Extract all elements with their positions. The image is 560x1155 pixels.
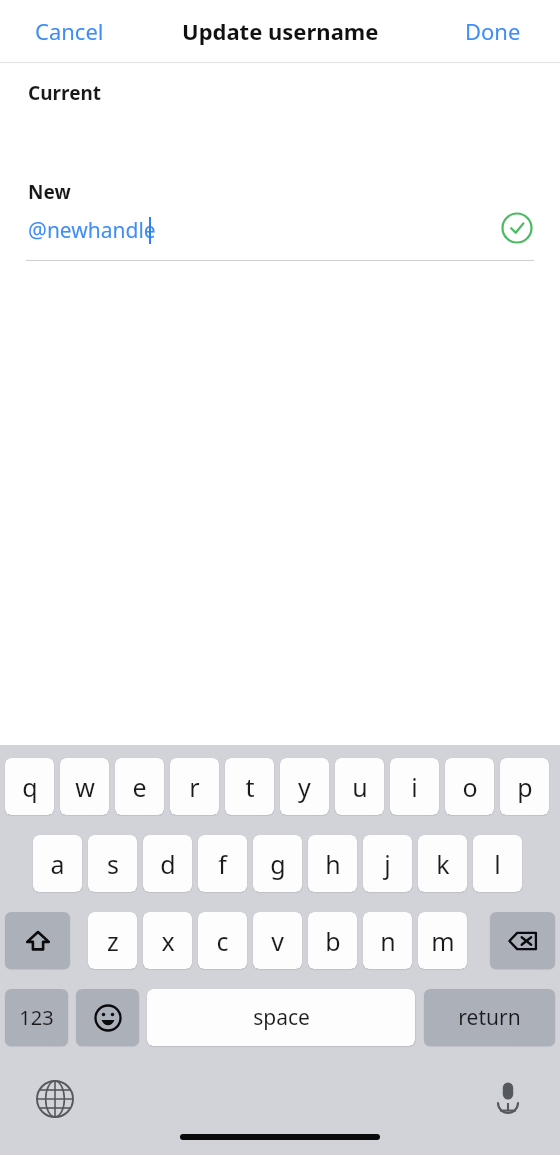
staticText: o [462,770,478,804]
button[interactable]: x [143,912,192,969]
button[interactable]: k [418,835,467,892]
button[interactable]: v [253,912,302,969]
staticText: t [245,770,255,804]
button[interactable]: d [143,835,192,892]
button[interactable]: Done [440,0,546,62]
staticText: w [75,770,95,804]
button[interactable]: w [60,758,109,815]
staticText: space [253,1003,310,1032]
staticText: d [160,847,176,881]
button[interactable]: h [308,835,357,892]
button[interactable]: Dictation [488,1077,528,1117]
button[interactable]: @newhandle [28,210,532,260]
button[interactable]: a [33,835,82,892]
staticText: p [517,770,533,804]
staticText: h [325,847,341,881]
button[interactable]: c [198,912,247,969]
button[interactable]: b [308,912,357,969]
staticText: return [458,1003,521,1032]
button[interactable]: Backspace [490,912,555,969]
staticText: Cancel [35,16,104,46]
staticText: a [50,847,65,881]
staticText: v [271,924,284,958]
button[interactable]: q [5,758,54,815]
button[interactable]: z [88,912,137,969]
button[interactable]: 123 [5,989,68,1046]
staticText: x [161,924,175,958]
button[interactable]: Emoji [76,989,139,1046]
staticText: Done [465,16,521,46]
button[interactable]: o [445,758,494,815]
button[interactable]: f [198,835,247,892]
button[interactable]: u [335,758,384,815]
staticText: Current [28,80,102,106]
staticText: n [380,924,396,958]
button[interactable]: r [170,758,219,815]
button[interactable]: Shift [5,912,70,969]
button[interactable]: j [363,835,412,892]
staticText: k [436,847,450,881]
button[interactable]: g [253,835,302,892]
button[interactable]: n [363,912,412,969]
button[interactable]: s [88,835,137,892]
button[interactable]: t [225,758,274,815]
button[interactable]: i [390,758,439,815]
button[interactable]: m [418,912,467,969]
button[interactable]: p [500,758,549,815]
staticText: New [28,179,71,205]
staticText: f [218,847,227,881]
button[interactable]: return [424,989,555,1046]
button[interactable]: y [280,758,329,815]
staticText: g [270,847,286,881]
staticText: Update username [182,16,379,46]
staticText: c [216,924,229,958]
staticText: @newhandle [28,216,156,245]
staticText: r [189,770,200,804]
staticText: m [431,924,455,958]
staticText: u [352,770,368,804]
button[interactable]: e [115,758,164,815]
staticText: q [22,770,38,804]
staticText: 123 [19,1004,54,1031]
staticText: b [325,924,341,958]
staticText: s [107,847,119,881]
staticText: y [298,770,311,804]
staticText: e [132,770,147,804]
button[interactable]: l [473,835,522,892]
button[interactable]: Cancel [14,0,124,62]
staticText: j [384,847,391,881]
button[interactable]: Switch keyboard language [35,1079,75,1119]
staticText: z [107,924,119,958]
other: Username available [501,212,533,244]
button[interactable]: space [147,989,415,1046]
staticText: i [411,770,418,804]
staticText: l [494,847,501,881]
